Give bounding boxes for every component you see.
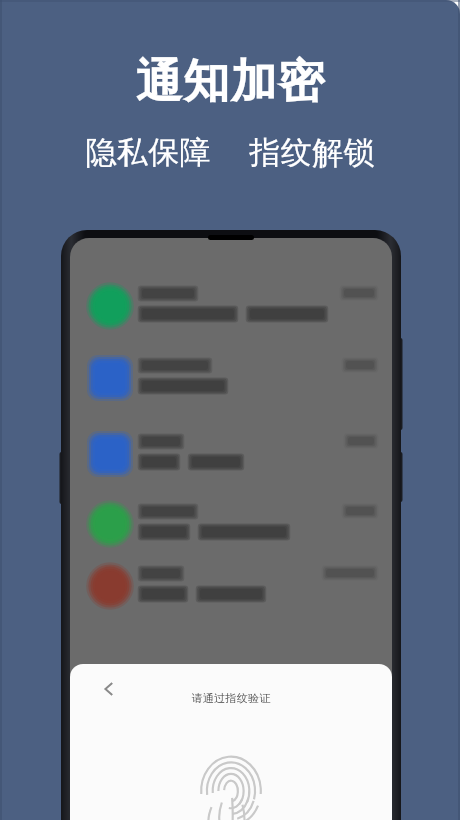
button[interactable]: Back [92,672,126,706]
staticText: 指纹解锁 [249,133,375,172]
button[interactable] [70,424,392,486]
staticText: 请通过指纹验证 [191,691,271,705]
button[interactable] [70,494,392,556]
button[interactable] [70,348,392,410]
staticText: 隐私保障 [85,133,211,172]
staticText: 通知加密 [135,53,325,111]
button[interactable] [70,276,392,338]
button[interactable] [70,556,392,618]
button[interactable]: Fingerprint [192,756,270,820]
